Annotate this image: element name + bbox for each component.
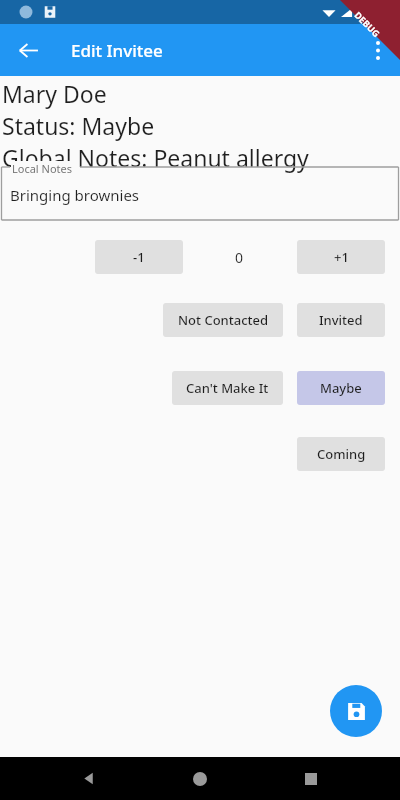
staticText: Bringing brownies — [10, 185, 140, 205]
button[interactable]: Invited — [297, 303, 385, 337]
staticText: Can't Make It — [186, 379, 269, 397]
staticText: Coming — [317, 445, 366, 463]
button[interactable]: Can't Make It — [172, 371, 283, 405]
button[interactable]: Maybe — [297, 371, 385, 405]
staticText: -1 — [133, 248, 145, 266]
button[interactable]: Coming — [297, 437, 385, 471]
button[interactable]: Back — [5, 27, 51, 73]
button[interactable]: More options — [356, 28, 400, 72]
button[interactable]: Bringing brownies — [10, 185, 400, 215]
staticText: DEBUG — [352, 9, 383, 39]
staticText: +1 — [334, 248, 349, 266]
staticText: Not Contacted — [178, 311, 269, 329]
button[interactable]: Not Contacted — [163, 303, 283, 337]
staticText: Maybe — [320, 379, 362, 397]
staticText: Mary Doe — [2, 78, 107, 109]
staticText: Edit Invitee — [71, 39, 163, 62]
button[interactable]: Save — [330, 685, 382, 737]
button[interactable]: Recents — [288, 757, 334, 800]
button[interactable]: Back — [66, 757, 112, 800]
staticText: 0 — [235, 248, 244, 267]
staticText: Local Notes — [12, 161, 73, 176]
staticText: Status: Maybe — [2, 110, 155, 141]
button[interactable]: Home — [177, 757, 223, 800]
button[interactable]: +1 — [297, 240, 385, 274]
staticText: Global Notes: Peanut allergy — [2, 142, 309, 173]
button[interactable]: -1 — [95, 240, 183, 274]
staticText: Invited — [319, 311, 363, 329]
